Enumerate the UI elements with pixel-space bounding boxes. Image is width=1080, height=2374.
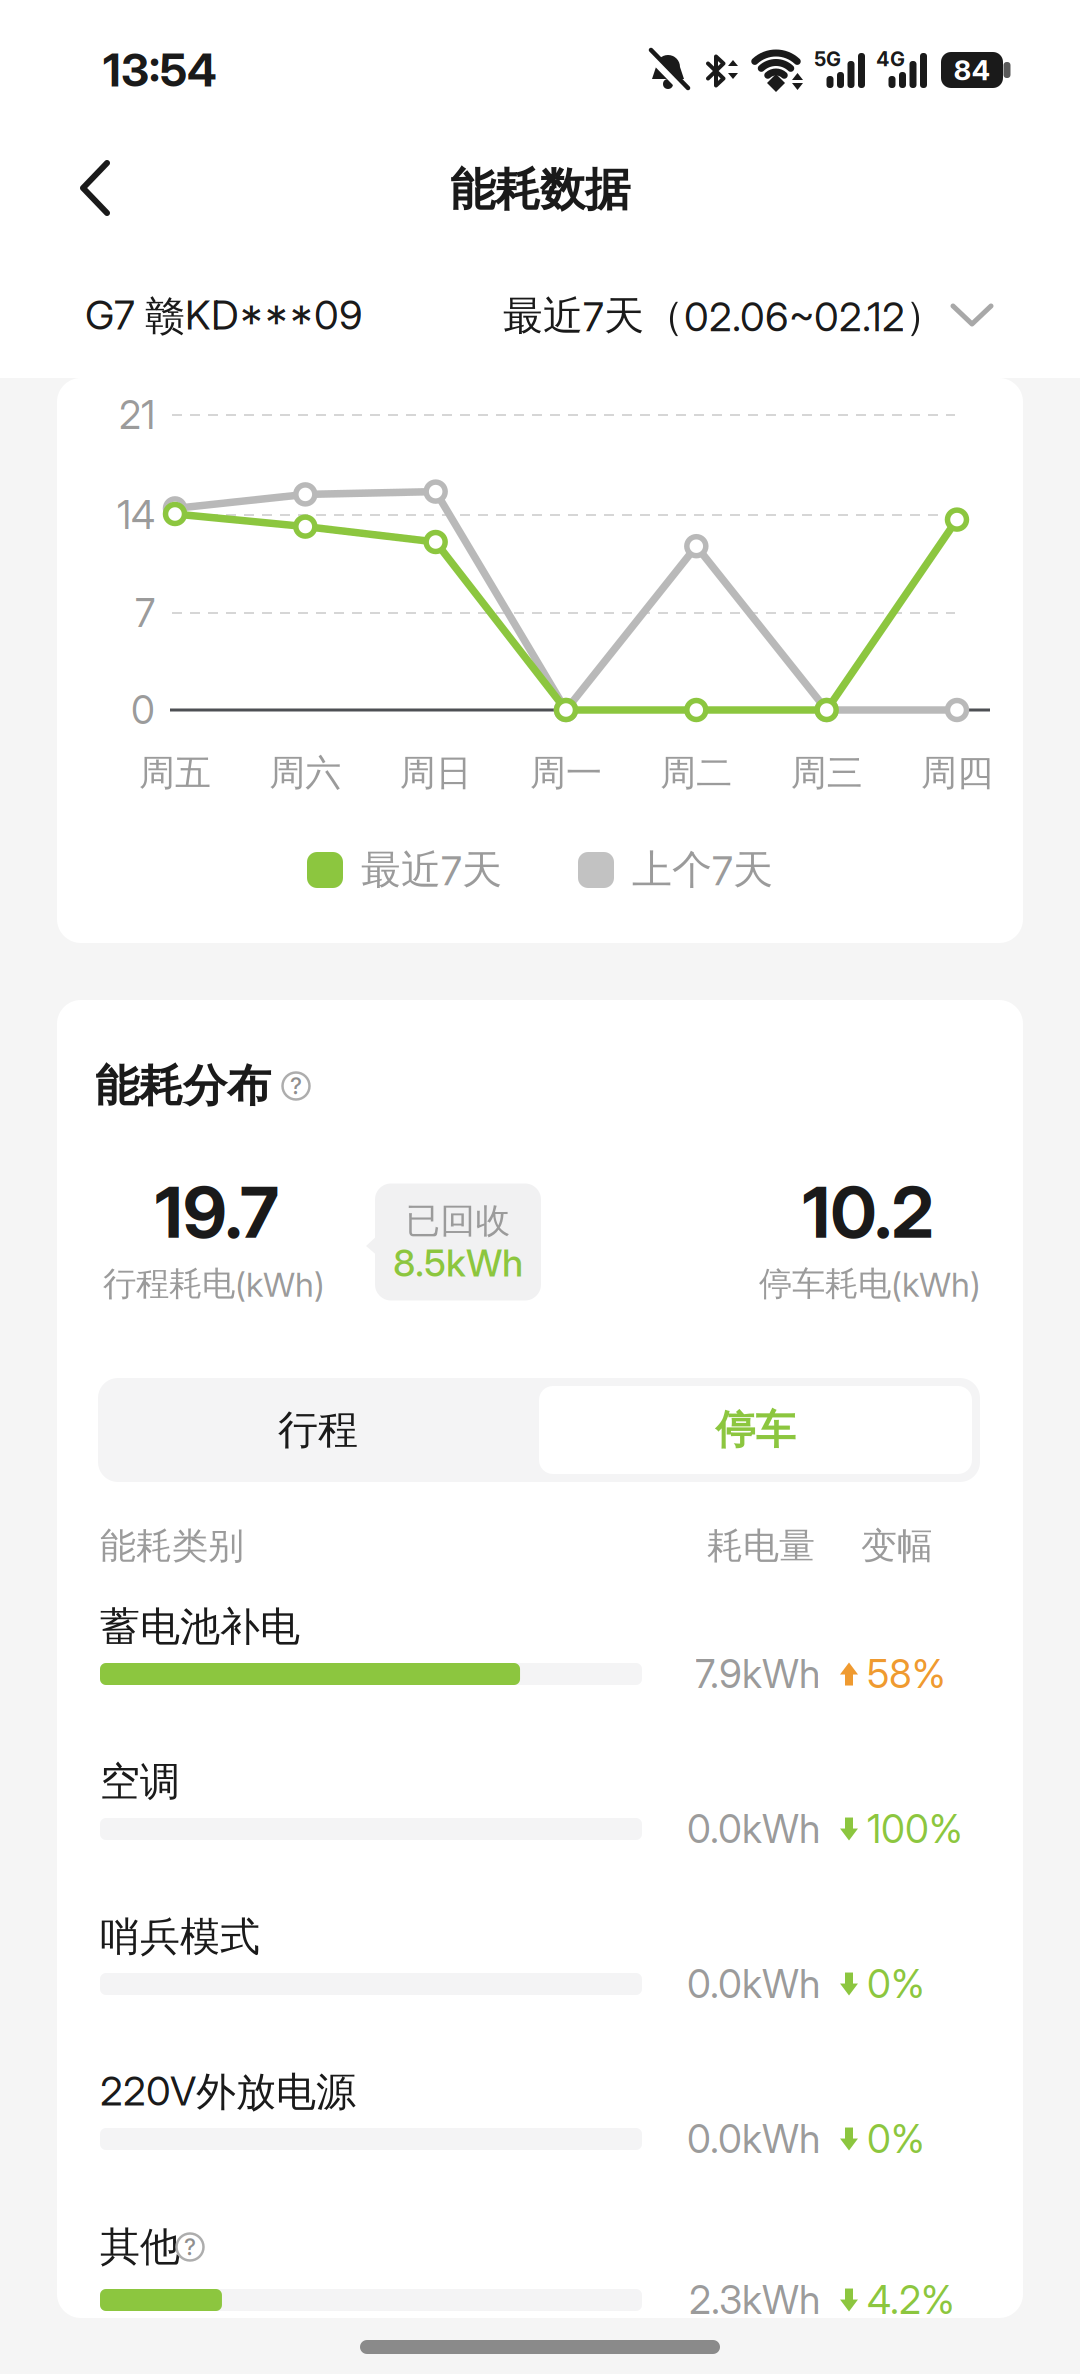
button[interactable]: 最近7天（02.06~02.12） <box>0 0 1080 2374</box>
staticText: 0% <box>867 2116 925 2162</box>
button[interactable]: 停车 <box>0 0 1080 2374</box>
staticText: 7.9kWh <box>695 1651 820 1697</box>
staticText: 其他 <box>100 2222 180 2271</box>
staticText: 7 <box>135 590 155 636</box>
staticText: 最近7天 <box>361 845 502 894</box>
staticText: 周一 <box>530 751 602 795</box>
staticText: 能耗分布 <box>95 1059 271 1113</box>
staticText: 0% <box>867 1961 925 2007</box>
staticText: 耗电量 <box>707 1524 815 1568</box>
staticText: 100% <box>867 1806 963 1852</box>
staticText: 行程耗电(kWh) <box>103 1263 325 1304</box>
staticText: 4.2% <box>867 2277 955 2323</box>
staticText: 已回收 <box>405 1200 510 1242</box>
staticText: 220V外放电源 <box>100 2067 356 2117</box>
staticText: 2.3kWh <box>689 2277 820 2323</box>
button[interactable]: ? <box>0 0 1080 2374</box>
staticText: 8.5kWh <box>393 1241 523 1285</box>
staticText: 停车 <box>715 1405 795 1454</box>
staticText: 蓄电池补电 <box>100 1602 300 1651</box>
staticText: 停车耗电(kWh) <box>759 1263 981 1304</box>
staticText: 最近7天（02.06~02.12） <box>503 291 945 340</box>
staticText: 19.7 <box>155 1169 279 1255</box>
staticText: 周三 <box>791 751 863 795</box>
staticText: 空调 <box>100 1757 180 1806</box>
staticText: ? <box>184 2234 196 2260</box>
staticText: 能耗类别 <box>100 1524 244 1568</box>
staticText: 周四 <box>921 751 993 795</box>
staticText: 哨兵模式 <box>100 1912 260 1961</box>
staticText: 58% <box>867 1651 946 1697</box>
button[interactable]: 行程 <box>0 0 1080 2374</box>
staticText: 13:54 <box>103 43 217 97</box>
button[interactable]: ? <box>0 0 1080 2374</box>
staticText: G7 赣KD***09 <box>85 291 363 341</box>
staticText: 21 <box>119 392 155 438</box>
staticText: 周五 <box>139 751 211 795</box>
staticText: 周二 <box>660 751 732 795</box>
staticText: 周日 <box>400 751 472 795</box>
staticText: 0.0kWh <box>687 2116 820 2162</box>
staticText: 0.0kWh <box>687 1961 820 2007</box>
staticText: 行程 <box>278 1405 358 1454</box>
staticText: 0 <box>131 687 155 733</box>
staticText: 能耗数据 <box>450 162 630 218</box>
staticText: 14 <box>117 492 155 538</box>
staticText: 5G <box>814 47 841 71</box>
staticText: 4G <box>876 47 905 71</box>
staticText: 周六 <box>269 751 341 795</box>
staticText: 0.0kWh <box>687 1806 820 1852</box>
staticText: 上个7天 <box>632 845 773 894</box>
staticText: 变幅 <box>861 1524 933 1568</box>
staticText: 84 <box>953 53 990 86</box>
button[interactable] <box>70 153 130 223</box>
staticText: ? <box>290 1073 302 1099</box>
staticText: 10.2 <box>802 1169 933 1255</box>
